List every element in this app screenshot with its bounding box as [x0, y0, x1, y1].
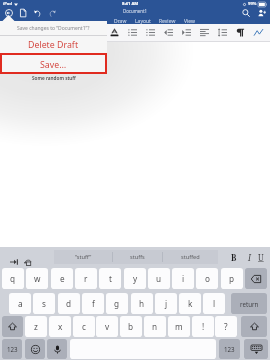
button[interactable]: Share: [255, 5, 269, 20]
button[interactable]: Font color: [105, 24, 123, 41]
staticText: 123: [224, 345, 235, 353]
staticText: g: [114, 298, 120, 309]
staticText: 99%: [248, 1, 257, 7]
button[interactable]: Shift: [241, 316, 267, 337]
button[interactable]: B: [227, 250, 241, 264]
staticText: q: [10, 273, 16, 284]
staticText: a: [18, 298, 23, 309]
button[interactable]: u: [148, 268, 170, 289]
button[interactable]: Back: [2, 5, 16, 20]
button[interactable]: Hide keyboard: [244, 339, 268, 359]
staticText: c: [82, 321, 86, 332]
staticText: z: [34, 321, 38, 332]
button[interactable]: i: [172, 268, 194, 289]
button[interactable]: Line spacing: [213, 24, 231, 41]
button[interactable]: Undo: [20, 255, 36, 269]
button[interactable]: h: [131, 293, 153, 314]
button[interactable]: l: [203, 293, 225, 314]
button[interactable]: Decrease indent: [159, 24, 177, 41]
button[interactable]: o: [196, 268, 218, 289]
button[interactable]: Delete Draft: [0, 36, 107, 54]
button[interactable]: m: [168, 316, 190, 337]
staticText: Save…: [40, 59, 67, 71]
button[interactable]: Emoji: [25, 339, 45, 359]
button[interactable]: Bullets: [123, 24, 141, 41]
button[interactable]: f: [82, 293, 104, 314]
staticText: Review: [159, 18, 176, 25]
button[interactable]: e: [51, 268, 73, 289]
button[interactable]: t: [99, 268, 121, 289]
button[interactable]: ?: [215, 316, 237, 337]
button[interactable]: Numbering: [141, 24, 159, 41]
button[interactable]: j: [155, 293, 177, 314]
staticText: t: [109, 273, 112, 284]
button[interactable]: w: [26, 268, 48, 289]
button[interactable]: Shift: [2, 316, 23, 337]
staticText: Some random stuff: [32, 75, 76, 81]
button[interactable]: k: [179, 293, 201, 314]
button[interactable]: Draw: [110, 17, 131, 26]
button[interactable]: return: [231, 293, 267, 314]
staticText: d: [66, 298, 72, 309]
button[interactable]: y: [124, 268, 146, 289]
button[interactable]: r: [75, 268, 97, 289]
button[interactable]: Paragraph marks: [231, 24, 249, 41]
button[interactable]: q: [2, 268, 24, 289]
button[interactable]: Search: [239, 5, 253, 20]
staticText: n: [152, 321, 158, 332]
button[interactable]: Styles: [249, 24, 267, 41]
staticText: Layout: [135, 18, 151, 25]
staticText: y: [133, 273, 138, 284]
button[interactable]: I: [242, 250, 256, 264]
staticText: Draw: [114, 18, 127, 25]
button[interactable]: Export: [16, 5, 30, 20]
staticText: r: [84, 273, 88, 284]
staticText: p: [229, 273, 235, 284]
button[interactable]: stuffed: [163, 250, 218, 264]
button[interactable]: c: [73, 316, 95, 337]
button[interactable]: p: [221, 268, 243, 289]
button[interactable]: d: [58, 293, 80, 314]
staticText: iPad: [3, 1, 12, 7]
staticText: v: [105, 321, 110, 332]
button[interactable]: a: [9, 293, 31, 314]
button[interactable]: Backspace: [245, 268, 267, 289]
button[interactable]: s: [33, 293, 55, 314]
button[interactable]: stuffs: [112, 250, 163, 264]
staticText: stuffs: [130, 253, 145, 261]
button[interactable]: 123: [219, 339, 240, 359]
button[interactable]: Review: [155, 17, 180, 26]
button[interactable]: Align left: [195, 24, 213, 41]
staticText: w: [34, 273, 41, 284]
button[interactable]: View: [180, 17, 199, 26]
staticText: B: [231, 252, 237, 263]
button[interactable]: Undo: [31, 5, 45, 20]
button[interactable]: n: [144, 316, 166, 337]
staticText: u: [156, 273, 162, 284]
button[interactable]: x: [49, 316, 71, 337]
staticText: !: [202, 321, 205, 332]
staticText: j: [165, 298, 168, 309]
staticText: i: [182, 273, 185, 284]
button[interactable]: Increase indent: [177, 24, 195, 41]
staticText: “stuff”: [75, 253, 92, 261]
button[interactable]: Dictation: [47, 339, 67, 359]
button[interactable]: “stuff”: [54, 250, 112, 264]
staticText: View: [184, 18, 195, 25]
button[interactable]: g: [106, 293, 128, 314]
button[interactable]: b: [120, 316, 142, 337]
button[interactable]: U: [254, 250, 268, 264]
staticText: m: [175, 321, 183, 332]
button[interactable]: Layout: [131, 17, 155, 26]
staticText: o: [205, 273, 210, 284]
button[interactable]: Save…: [0, 55, 107, 74]
button[interactable]: 123: [2, 339, 22, 359]
staticText: stuffed: [181, 253, 200, 261]
button[interactable]: v: [96, 316, 118, 337]
button[interactable]: z: [25, 316, 47, 337]
staticText: 8:41 AM: [122, 1, 139, 7]
button[interactable]: Tab: [6, 255, 22, 269]
button[interactable]: !: [192, 316, 214, 337]
button[interactable]: Redo: [45, 5, 59, 20]
